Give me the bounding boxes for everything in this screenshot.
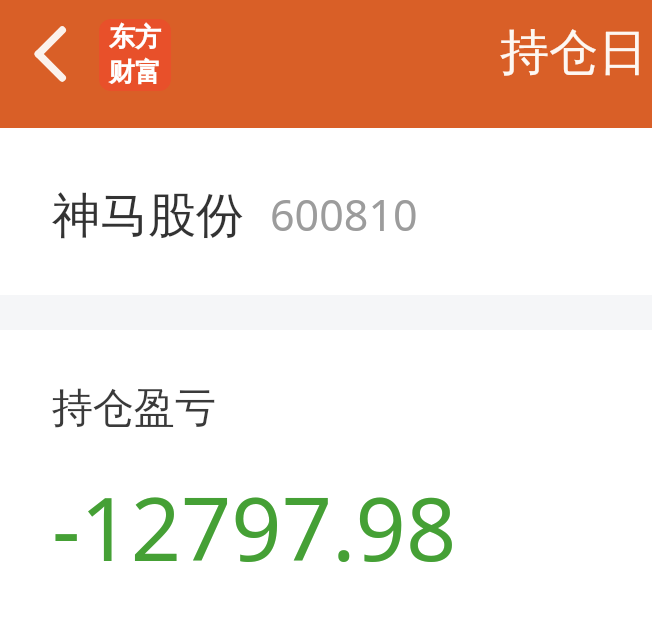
button[interactable]: 神马股份 — [0, 128, 652, 295]
button[interactable]: 持仓盈亏 — [0, 330, 652, 624]
staticText: 持仓盈亏 — [52, 383, 216, 435]
button[interactable]: Back — [14, 16, 86, 92]
staticText: 财富 — [109, 56, 161, 89]
staticText: -12797.98 — [52, 467, 457, 587]
staticText: 持仓日 — [500, 22, 647, 84]
button[interactable]: East Money logo — [99, 19, 171, 91]
staticText: 东方 — [109, 21, 161, 54]
staticText: 600810 — [270, 185, 418, 244]
staticText: 神马股份 — [52, 186, 244, 246]
